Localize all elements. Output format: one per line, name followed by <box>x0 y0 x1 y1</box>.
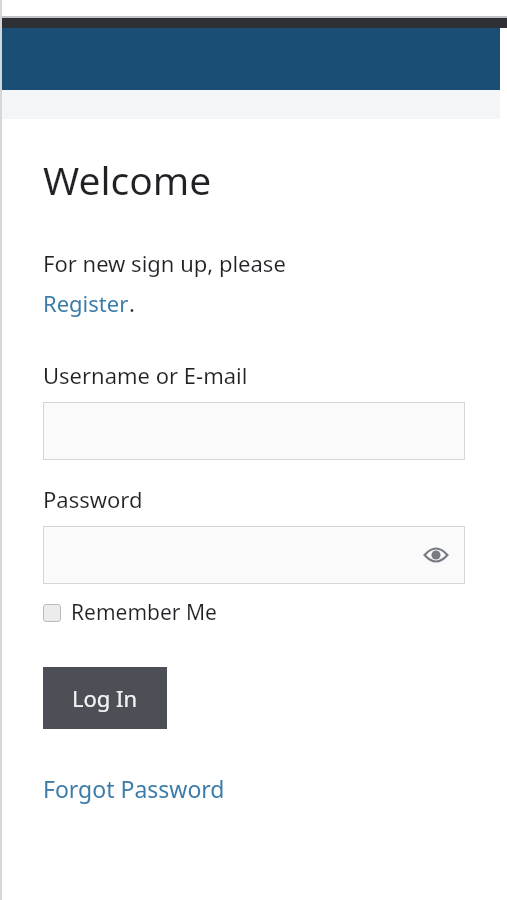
button[interactable]: Password input <box>43 526 465 584</box>
staticText: Forgot Password <box>43 773 225 804</box>
button[interactable]: Remember Me <box>43 598 217 627</box>
button[interactable]: Forgot Password <box>43 773 225 804</box>
staticText: Password <box>43 484 143 514</box>
staticText: Register <box>43 288 129 318</box>
button[interactable]: Register <box>43 288 129 318</box>
staticText: Log In <box>72 683 138 713</box>
button[interactable]: Username or E-mail input <box>43 402 465 460</box>
staticText: Remember Me <box>71 598 217 627</box>
button[interactable]: Show password <box>421 540 451 570</box>
staticText: Username or E-mail <box>43 360 248 390</box>
staticText: For new sign up, please <box>43 248 286 278</box>
button[interactable]: Log In <box>43 667 167 729</box>
staticText: Welcome <box>43 153 212 206</box>
staticText: . <box>129 288 135 318</box>
